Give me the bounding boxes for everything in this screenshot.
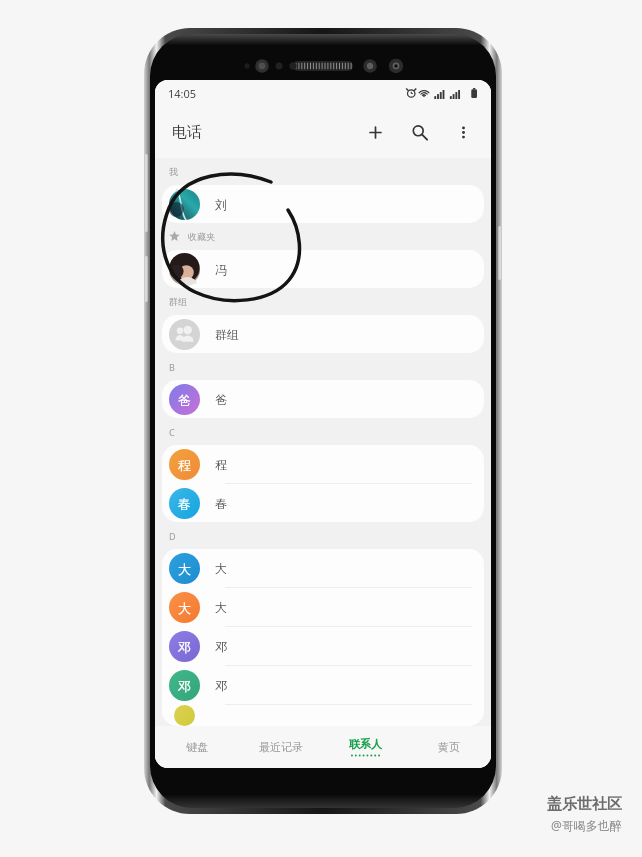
staticText: 我 bbox=[169, 166, 178, 177]
staticText: 群组 bbox=[169, 296, 187, 307]
button[interactable]: 群组 bbox=[162, 315, 484, 353]
staticText: 14:05 bbox=[168, 86, 197, 101]
staticText: 收藏夹 bbox=[188, 231, 215, 242]
staticText: 程 bbox=[178, 457, 191, 473]
staticText: 群组 bbox=[215, 327, 239, 342]
button[interactable]: 程 bbox=[162, 445, 484, 484]
staticText: C bbox=[169, 426, 175, 438]
button[interactable]: Search bbox=[397, 110, 441, 154]
staticText: 大 bbox=[215, 561, 227, 576]
staticText: 刘 bbox=[215, 197, 227, 212]
button[interactable]: 邓 bbox=[162, 666, 484, 705]
button[interactable]: 爸 bbox=[162, 380, 484, 418]
staticText: B bbox=[169, 361, 175, 373]
button[interactable]: 键盘 bbox=[155, 726, 239, 768]
staticText: 邓 bbox=[178, 639, 191, 655]
staticText: 邓 bbox=[215, 678, 227, 693]
staticText: 邓 bbox=[178, 678, 191, 694]
staticText: 冯 bbox=[215, 262, 227, 277]
staticText: 大 bbox=[215, 600, 227, 615]
staticText: 程 bbox=[215, 457, 227, 472]
staticText: 盖乐世社区 bbox=[547, 795, 622, 814]
staticText: @哥喝多也醉 bbox=[551, 817, 622, 833]
staticText: 键盘 bbox=[186, 740, 208, 754]
button[interactable]: 黄页 bbox=[407, 726, 491, 768]
staticText: 春 bbox=[178, 496, 191, 512]
button[interactable]: 冯 bbox=[162, 250, 484, 288]
staticText: 爸 bbox=[178, 392, 191, 408]
button[interactable]: 刘 bbox=[162, 185, 484, 223]
button[interactable]: 邓 bbox=[162, 627, 484, 666]
staticText: 邓 bbox=[215, 639, 227, 654]
button[interactable]: 大 bbox=[162, 588, 484, 627]
staticText: 大 bbox=[178, 561, 191, 577]
button[interactable]: 最近记录 bbox=[239, 726, 323, 768]
staticText: 黄页 bbox=[438, 740, 460, 754]
staticText: 最近记录 bbox=[259, 740, 303, 754]
staticText: 爸 bbox=[215, 392, 227, 407]
staticText: 大 bbox=[178, 600, 191, 616]
button[interactable]: Add contact bbox=[353, 110, 397, 154]
staticText: D bbox=[169, 530, 176, 542]
button[interactable]: 联系人 bbox=[323, 726, 407, 768]
staticText: 春 bbox=[215, 496, 227, 511]
button[interactable]: More options bbox=[441, 110, 485, 154]
button[interactable] bbox=[162, 705, 484, 726]
staticText: 电话 bbox=[172, 123, 202, 142]
button[interactable]: 大 bbox=[162, 549, 484, 588]
staticText: 联系人 bbox=[349, 737, 382, 751]
button[interactable]: 春 bbox=[162, 484, 484, 522]
